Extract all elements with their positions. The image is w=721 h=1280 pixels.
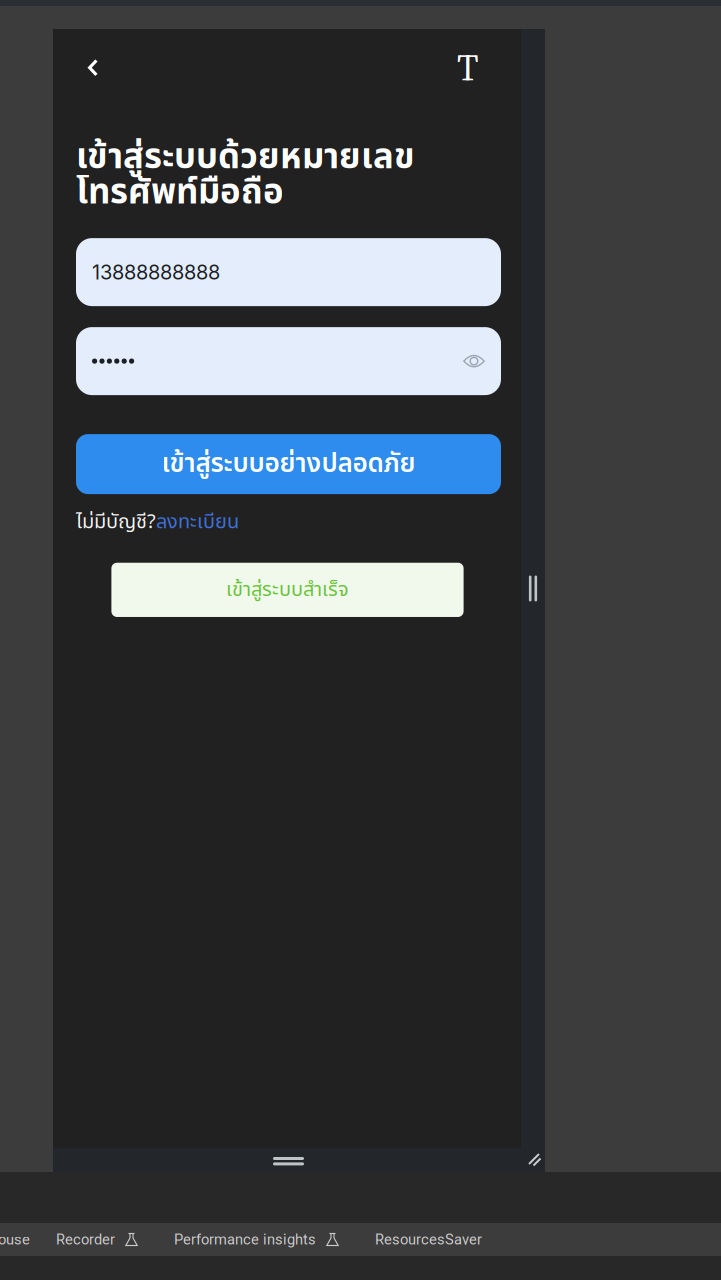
staticText: ลงทะเบียน xyxy=(156,507,239,537)
button[interactable]: ลงทะเบียน xyxy=(156,507,239,537)
staticText: T xyxy=(457,43,479,92)
staticText: Performance insights xyxy=(174,1231,316,1248)
staticText: Recorder xyxy=(56,1231,115,1248)
staticText: ResourcesSaver xyxy=(375,1231,482,1248)
button[interactable]: ResourcesSaver xyxy=(375,1231,482,1248)
button[interactable]: Performance insights xyxy=(174,1231,339,1248)
button[interactable]: Back xyxy=(53,47,118,88)
button[interactable]: Show password xyxy=(463,353,485,369)
button[interactable]: Change language xyxy=(443,37,493,98)
staticText: เข้าสู่ระบบสำเร็จ xyxy=(226,575,349,605)
staticText: 13888888888 xyxy=(92,260,220,284)
button[interactable]: เข้าสู่ระบบอย่างปลอดภัย xyxy=(76,434,501,494)
staticText: เข้าสู่ระบบด้วยหมายเลข xyxy=(76,131,415,184)
staticText: ouse xyxy=(0,1231,30,1248)
staticText: เข้าสู่ระบบอย่างปลอดภัย xyxy=(161,444,415,484)
staticText: โทรศัพท์มือถือ xyxy=(76,167,284,219)
button[interactable]: Recorder xyxy=(56,1231,138,1248)
staticText: ไม่มีบัญชี? xyxy=(76,507,156,537)
